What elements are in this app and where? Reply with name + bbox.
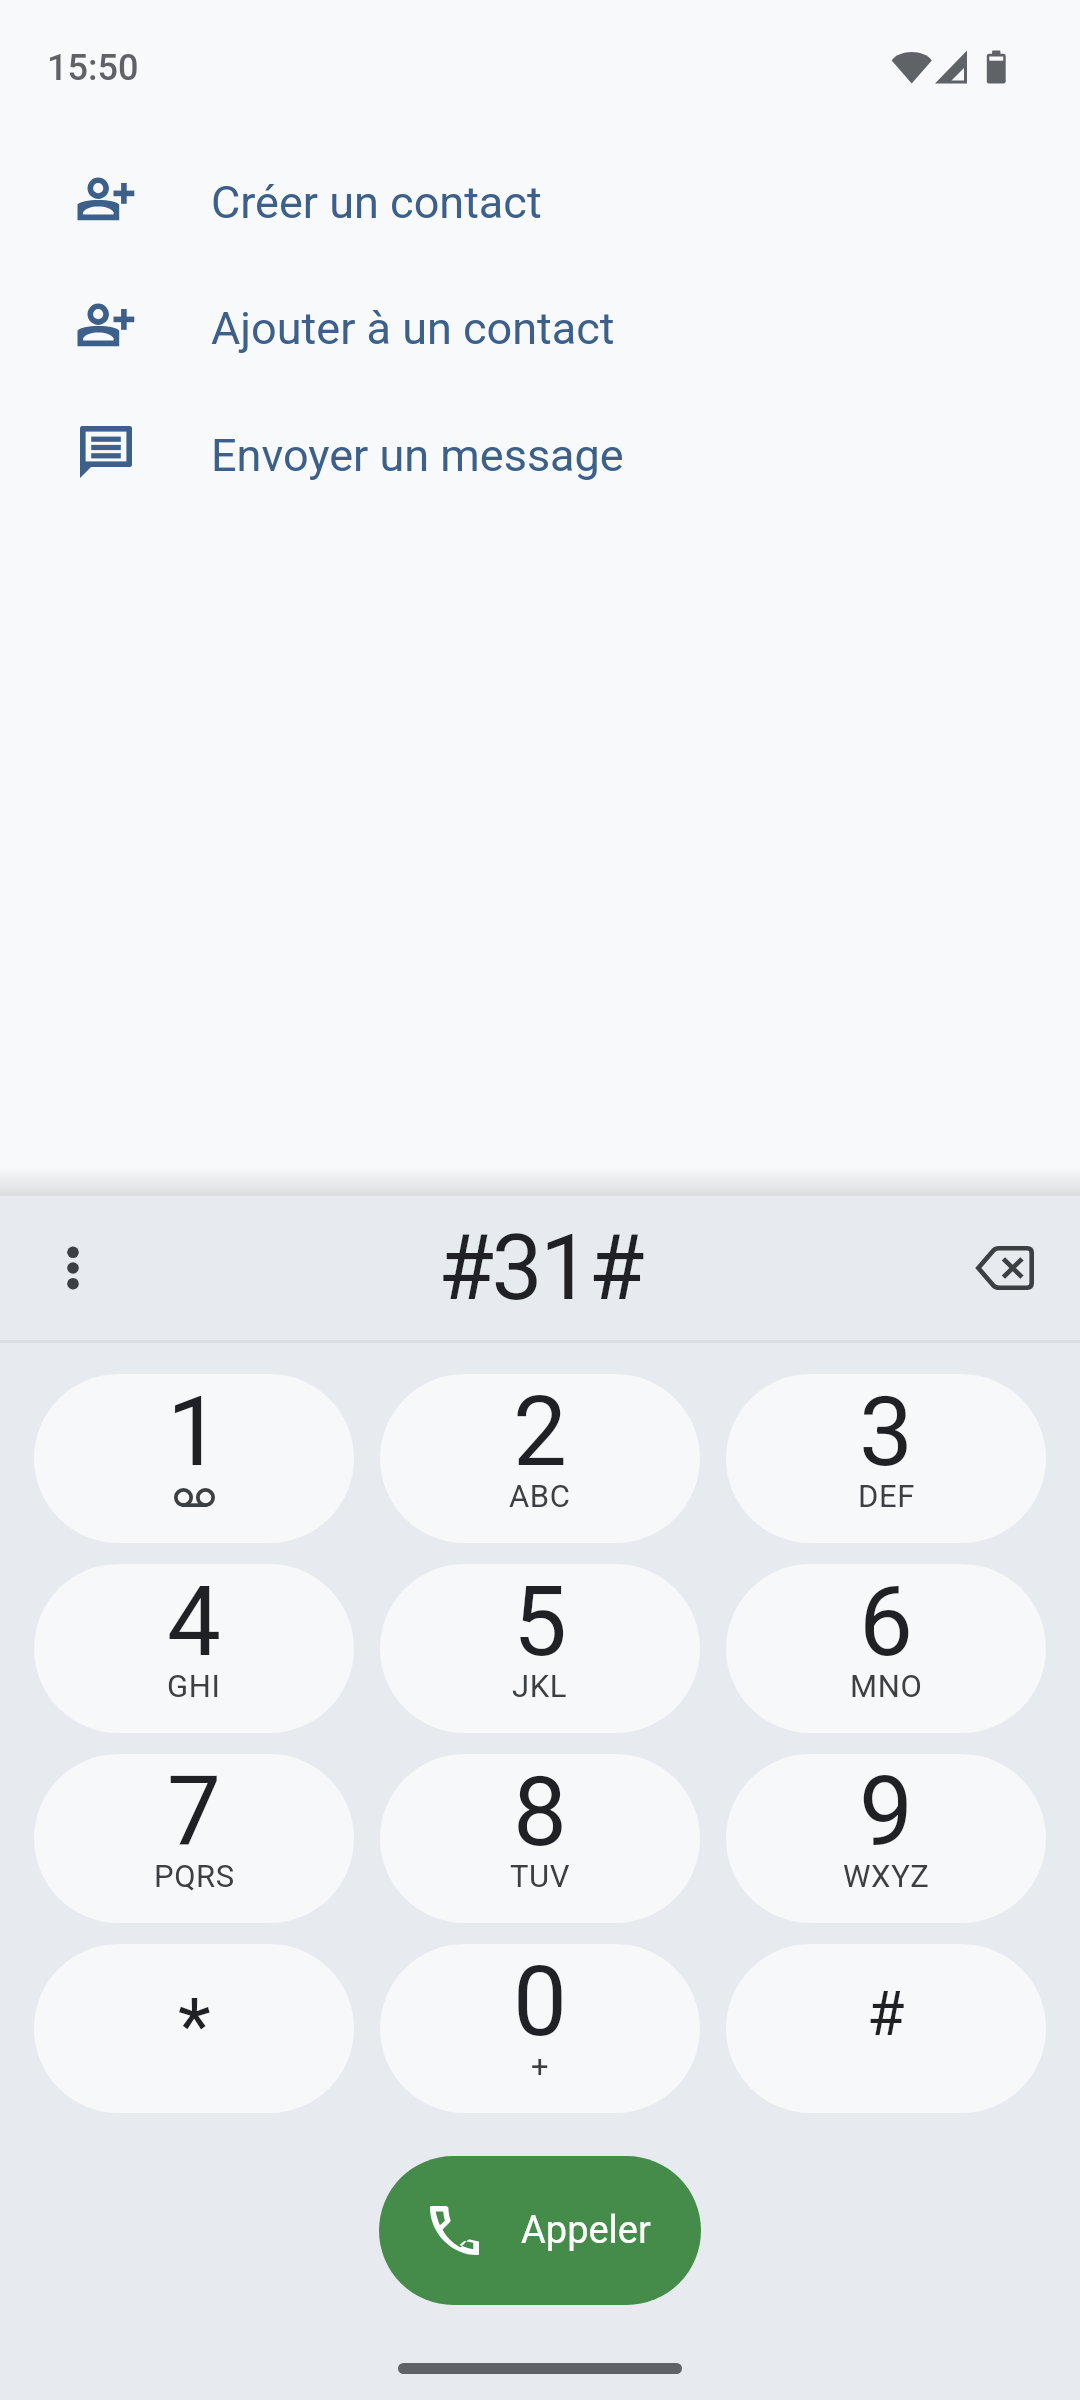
button[interactable]: 0 <box>380 1944 700 2113</box>
staticText: Créer un contact <box>211 176 542 229</box>
staticText: MNO <box>850 1668 923 1704</box>
staticText: GHI <box>167 1668 221 1704</box>
staticText: DEF <box>858 1478 915 1514</box>
staticText: * <box>178 1981 211 2070</box>
staticText: WXYZ <box>843 1858 930 1894</box>
button[interactable]: # <box>726 1944 1046 2113</box>
staticText: 9 <box>859 1756 913 1869</box>
button[interactable]: 9 <box>726 1754 1046 1923</box>
staticText: 3 <box>859 1376 913 1489</box>
button[interactable]: 7 <box>34 1754 354 1923</box>
staticText: 15:50 <box>47 47 139 89</box>
staticText: # <box>867 1978 905 2049</box>
button[interactable]: 5 <box>380 1564 700 1733</box>
button[interactable]: 6 <box>726 1564 1046 1733</box>
button[interactable]: Appeler <box>379 2156 701 2305</box>
button[interactable]: 8 <box>380 1754 700 1923</box>
button[interactable]: 3 <box>726 1374 1046 1543</box>
button[interactable]: 4 <box>34 1564 354 1733</box>
staticText: ABC <box>509 1478 571 1514</box>
staticText: Ajouter à un contact <box>211 302 615 355</box>
button[interactable]: 2 <box>380 1374 700 1543</box>
staticText: 6 <box>859 1566 913 1679</box>
button[interactable]: Backspace <box>930 1196 1080 1340</box>
button[interactable]: * <box>34 1944 354 2113</box>
staticText: 5 <box>513 1566 567 1679</box>
staticText: JKL <box>512 1668 568 1704</box>
staticText: Envoyer un message <box>211 429 624 482</box>
staticText: 2 <box>513 1376 567 1489</box>
button[interactable]: Envoyer un message <box>0 392 1080 518</box>
staticText: Appeler <box>521 2208 651 2253</box>
button[interactable]: 1 <box>34 1374 354 1543</box>
button[interactable]: Ajouter à un contact <box>0 265 1080 391</box>
staticText: 0 <box>513 1946 567 2059</box>
staticText: 7 <box>167 1756 221 1869</box>
staticText: + <box>531 2048 550 2084</box>
staticText: TUV <box>510 1858 571 1894</box>
staticText: 4 <box>167 1566 221 1679</box>
button[interactable]: More options <box>0 1196 146 1340</box>
staticText: 1 <box>167 1376 221 1489</box>
button[interactable]: Créer un contact <box>0 139 1080 265</box>
staticText: 8 <box>513 1756 567 1869</box>
staticText: PQRS <box>154 1858 235 1894</box>
staticText: #31# <box>438 1215 642 1322</box>
